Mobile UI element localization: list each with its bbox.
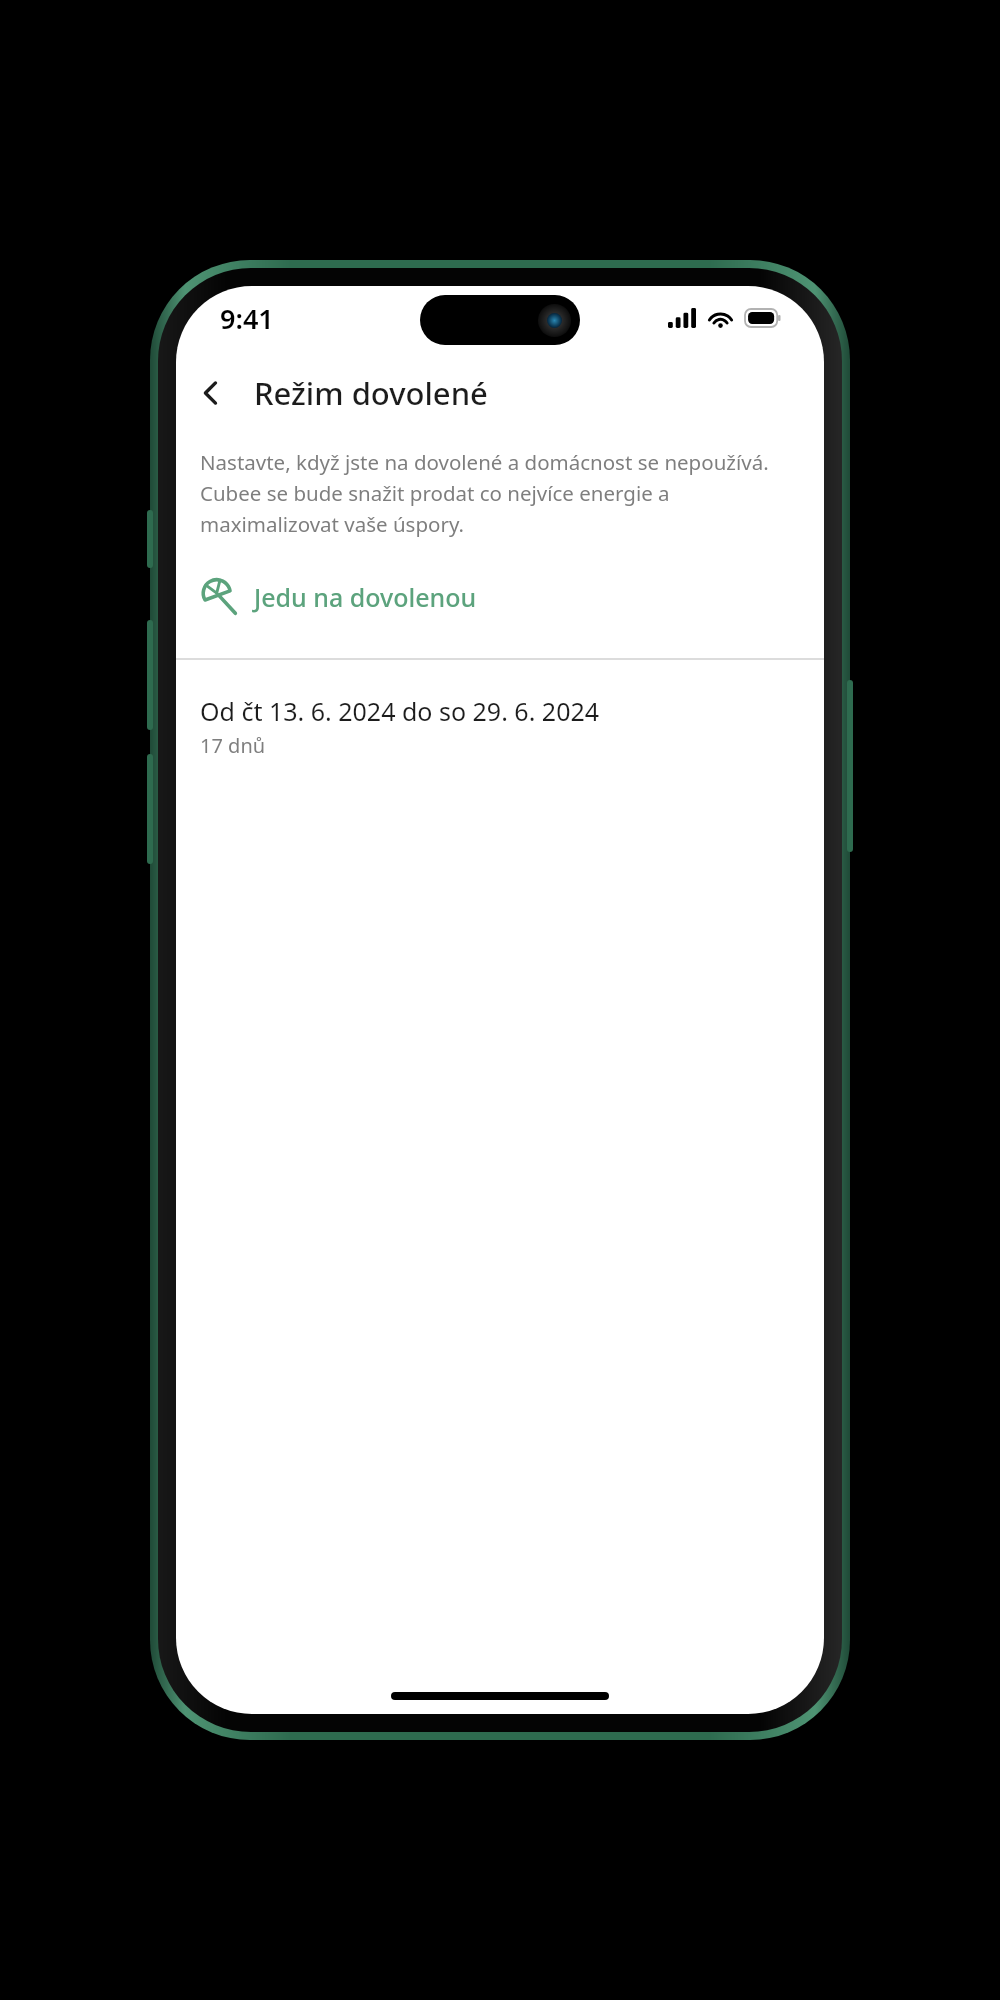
staticText: Režim dovolené [254,372,488,414]
staticText: 17 dnů [200,732,266,759]
button[interactable]: Od čt 13. 6. 2024 do so 29. 6. 2024 [176,690,824,763]
button[interactable]: Jedu na dovolenou [176,566,824,628]
staticText: Od čt 13. 6. 2024 do so 29. 6. 2024 [200,694,600,728]
staticText: 9:41 [220,300,274,337]
staticText: Jedu na dovolenou [254,580,477,614]
staticText: Nastavte, když jste na dovolené a domácn… [200,448,800,538]
button[interactable]: Back [182,364,240,422]
